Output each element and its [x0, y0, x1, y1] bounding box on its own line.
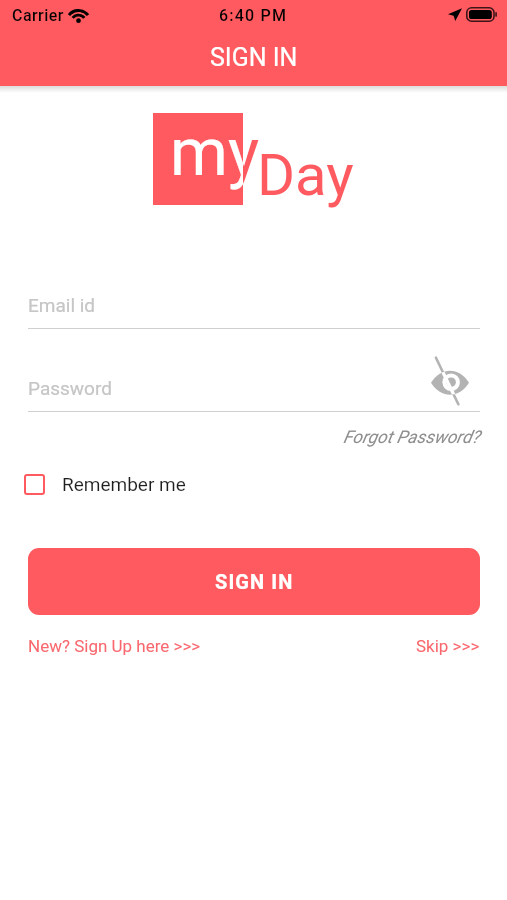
staticText: SIGN IN — [210, 43, 298, 72]
staticText: Email id — [28, 294, 96, 316]
staticText: Day — [257, 141, 354, 209]
staticText: 6:40 PM — [219, 6, 288, 25]
staticText: Password — [28, 377, 112, 399]
button[interactable]: SIGN IN — [28, 548, 480, 615]
staticText: New? Sign Up here >>> — [28, 636, 201, 656]
staticText: Skip >>> — [416, 636, 480, 656]
button[interactable]: Remember me — [24, 468, 186, 500]
button[interactable]: Forgot Password? — [330, 424, 480, 450]
staticText: my — [170, 114, 243, 191]
staticText: Remember me — [62, 473, 186, 495]
staticText: my — [170, 114, 260, 191]
staticText: Carrier — [12, 6, 64, 25]
staticText: Forgot Password? — [343, 427, 480, 448]
button[interactable]: New? Sign Up here >>> — [28, 633, 201, 659]
button[interactable]: Show password — [428, 362, 472, 400]
staticText: SIGN IN — [215, 570, 294, 593]
button[interactable]: Skip >>> — [400, 633, 480, 659]
